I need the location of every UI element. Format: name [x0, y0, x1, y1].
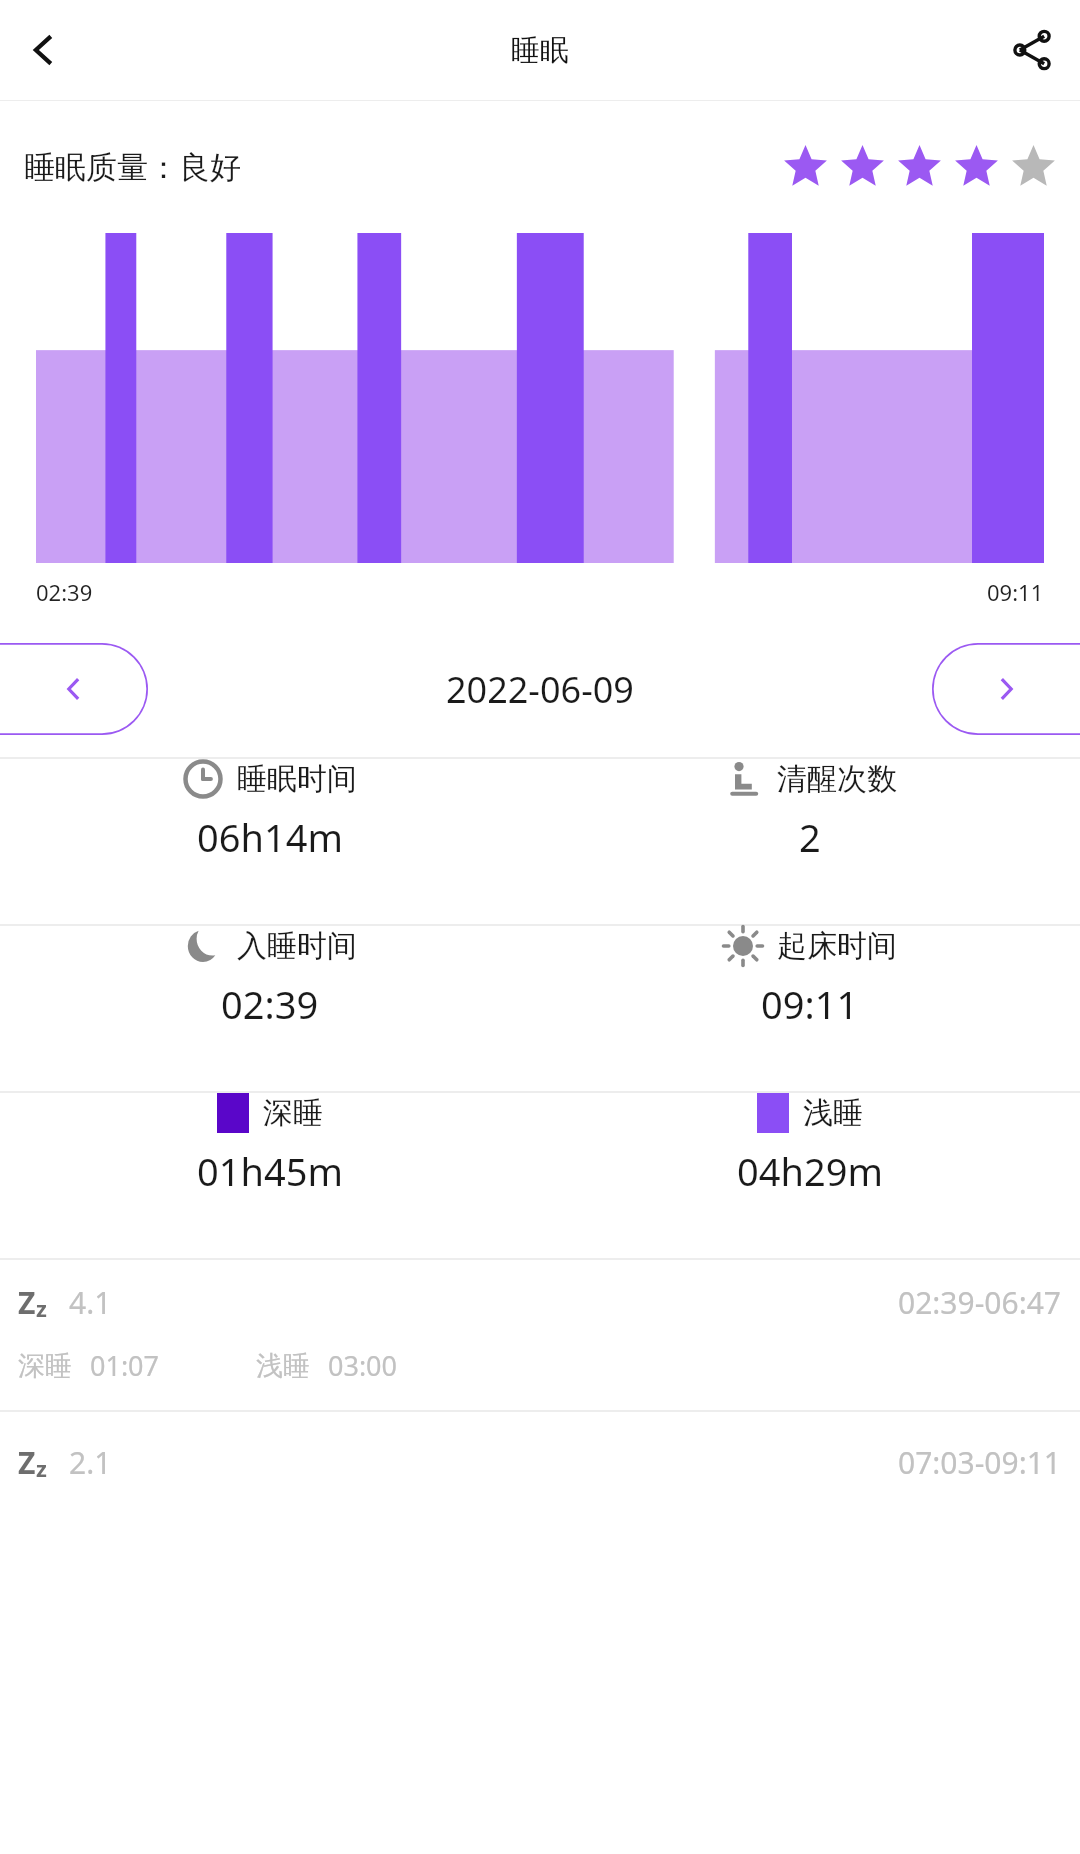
staticText: 4.1 — [69, 1282, 112, 1323]
button[interactable]: 起床时间 — [540, 926, 1080, 1030]
button[interactable]: Back — [10, 16, 78, 84]
staticText: Z — [18, 1442, 36, 1483]
button[interactable]: Z — [0, 1260, 1080, 1410]
staticText: 睡眠 — [511, 32, 569, 69]
staticText: 睡眠时间 — [237, 760, 357, 798]
staticText: 09:11 — [761, 978, 859, 1030]
staticText: 2 — [799, 811, 821, 863]
button[interactable]: 睡眠时间 — [0, 759, 540, 863]
button[interactable]: 浅睡 — [540, 1093, 1080, 1197]
staticText: 起床时间 — [777, 927, 897, 965]
staticText: 深睡 — [263, 1094, 323, 1132]
staticText: 02:39-06:47 — [898, 1282, 1062, 1323]
button[interactable]: 清醒次数 — [540, 759, 1080, 863]
staticText: 01:07 — [90, 1347, 160, 1384]
button[interactable]: Next day — [932, 643, 1080, 735]
staticText: z — [36, 1293, 47, 1323]
button[interactable]: 入睡时间 — [0, 926, 540, 1030]
staticText: 2.1 — [69, 1442, 112, 1483]
staticText: 睡眠质量：良好 — [24, 148, 241, 187]
staticText: 浅睡 — [803, 1094, 863, 1132]
staticText: 07:03-09:11 — [898, 1442, 1062, 1483]
button[interactable]: Previous day — [0, 643, 148, 735]
staticText: 浅睡 — [256, 1349, 310, 1383]
button[interactable]: Z — [0, 1412, 1080, 1512]
staticText: Z — [18, 1282, 36, 1323]
staticText: 01h45m — [197, 1145, 343, 1197]
staticText: 03:00 — [328, 1347, 398, 1384]
staticText: 清醒次数 — [777, 760, 897, 798]
staticText: 02:39 — [221, 978, 319, 1030]
button[interactable]: 深睡 — [0, 1093, 540, 1197]
staticText: 入睡时间 — [237, 927, 357, 965]
button[interactable]: Share — [998, 16, 1066, 84]
staticText: 2022-06-09 — [446, 665, 634, 714]
staticText: 02:39 — [36, 577, 93, 607]
staticText: 04h29m — [737, 1145, 883, 1197]
staticText: 06h14m — [197, 811, 343, 863]
staticText: z — [36, 1453, 47, 1483]
staticText: 09:11 — [987, 577, 1044, 607]
staticText: 深睡 — [18, 1349, 72, 1383]
